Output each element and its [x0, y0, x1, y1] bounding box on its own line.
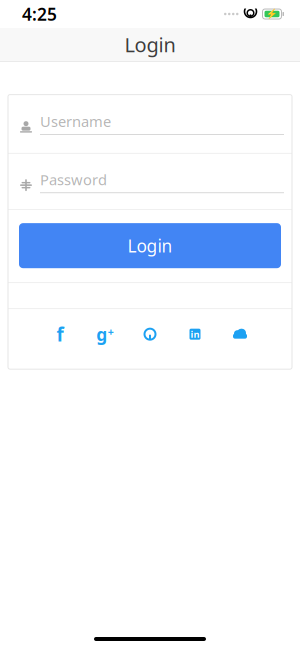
staticText: Password [40, 170, 107, 189]
staticText: + [108, 325, 114, 339]
button[interactable]: GitHub [139, 325, 161, 343]
button[interactable]: Login [19, 223, 281, 268]
staticText: Login [127, 234, 172, 257]
button[interactable]: Google Plus [94, 325, 116, 343]
staticText: g [96, 323, 107, 346]
button[interactable]: Facebook [49, 325, 71, 343]
staticText: in [190, 328, 199, 340]
staticText: 4:25 [22, 2, 57, 25]
staticText: Username [40, 112, 111, 131]
button[interactable]: LinkedIn [184, 325, 206, 343]
staticText: ⚡ [266, 9, 278, 19]
button[interactable]: Username [8, 95, 292, 153]
button[interactable]: Password [8, 154, 292, 209]
staticText: Login [124, 31, 175, 58]
button[interactable]: Cloud [229, 325, 251, 343]
staticText: f [56, 322, 63, 347]
